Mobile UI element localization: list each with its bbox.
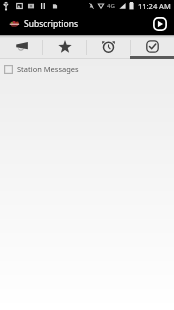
staticText: 4G [107, 2, 115, 10]
staticText: Station Messages [17, 64, 79, 74]
button[interactable]: Favorites [43, 35, 86, 59]
button[interactable]: Alarms [87, 35, 130, 59]
button[interactable]: Station Messages [0, 59, 174, 79]
button[interactable]: Subscriptions [131, 35, 174, 59]
button[interactable]: Announcements [0, 35, 42, 59]
staticText: Subscriptions [24, 18, 78, 30]
staticText: 11:24 AM [138, 1, 171, 11]
button[interactable]: Play [151, 15, 168, 32]
